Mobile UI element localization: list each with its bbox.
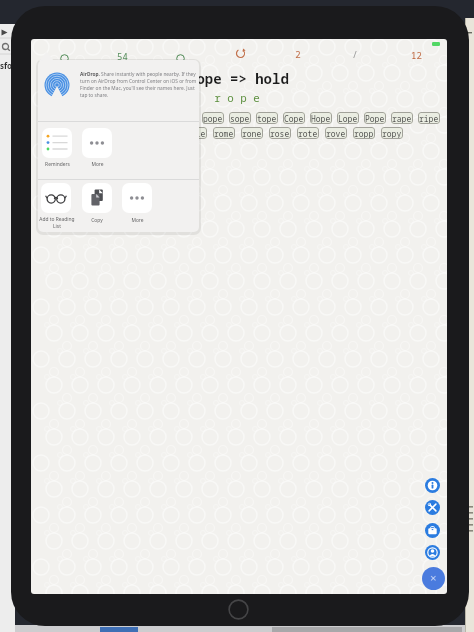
button[interactable] (41, 183, 71, 213)
staticText: Lope (338, 113, 358, 124)
staticText: Hope (311, 113, 331, 124)
staticText: rote (298, 128, 318, 139)
staticText: 2 (295, 48, 301, 60)
staticText: Reminders (45, 161, 70, 168)
staticText: More (91, 161, 104, 168)
button[interactable]: Hope (310, 112, 332, 124)
button[interactable]: Pope (364, 112, 386, 124)
button[interactable] (425, 478, 440, 493)
staticText: ripe (419, 113, 439, 124)
staticText: rose (270, 128, 290, 139)
staticText: More (131, 217, 144, 224)
staticText: ropp (354, 128, 374, 139)
staticText: role (186, 128, 206, 139)
button[interactable]: Lope (337, 112, 359, 124)
button[interactable]: sope (229, 112, 251, 124)
staticText: Add to Reading List (39, 216, 75, 229)
button[interactable] (422, 567, 445, 590)
button[interactable]: pope (202, 112, 224, 124)
staticText: Copy (91, 217, 103, 224)
staticText: rome (214, 128, 234, 139)
button[interactable]: rape (391, 112, 413, 124)
button[interactable] (42, 128, 72, 158)
button[interactable] (425, 523, 440, 538)
staticText: rape (392, 113, 412, 124)
button[interactable] (122, 183, 152, 213)
staticText: rope => hold (188, 69, 289, 88)
button[interactable]: ropy (381, 127, 403, 139)
staticText: Cope (284, 113, 304, 124)
staticText: tope (257, 113, 277, 124)
staticText: sfor (0, 60, 16, 71)
staticText: 12 (411, 49, 422, 61)
staticText: rove (326, 128, 346, 139)
staticText: AirDrop. Share instantly with people nea… (80, 71, 198, 101)
button[interactable] (425, 500, 440, 515)
button[interactable]: ripe (418, 112, 440, 124)
button[interactable]: Cope (283, 112, 305, 124)
staticText: / (352, 48, 358, 60)
button[interactable]: role (185, 127, 207, 139)
button[interactable]: rone (241, 127, 263, 139)
button[interactable]: tope (256, 112, 278, 124)
staticText: Pope (365, 113, 385, 124)
staticText: ropy (382, 128, 402, 139)
button[interactable]: ropp (353, 127, 375, 139)
button[interactable]: rome (213, 127, 235, 139)
button[interactable] (425, 545, 440, 560)
button[interactable]: rote (297, 127, 319, 139)
staticText: sope (230, 113, 250, 124)
staticText: pope (203, 113, 223, 124)
staticText: r o p e (214, 90, 260, 104)
staticText: 54 (117, 50, 128, 62)
staticText: rone (242, 128, 262, 139)
button[interactable] (82, 128, 112, 158)
button[interactable]: rose (269, 127, 291, 139)
button[interactable] (82, 183, 112, 213)
button[interactable]: rove (325, 127, 347, 139)
